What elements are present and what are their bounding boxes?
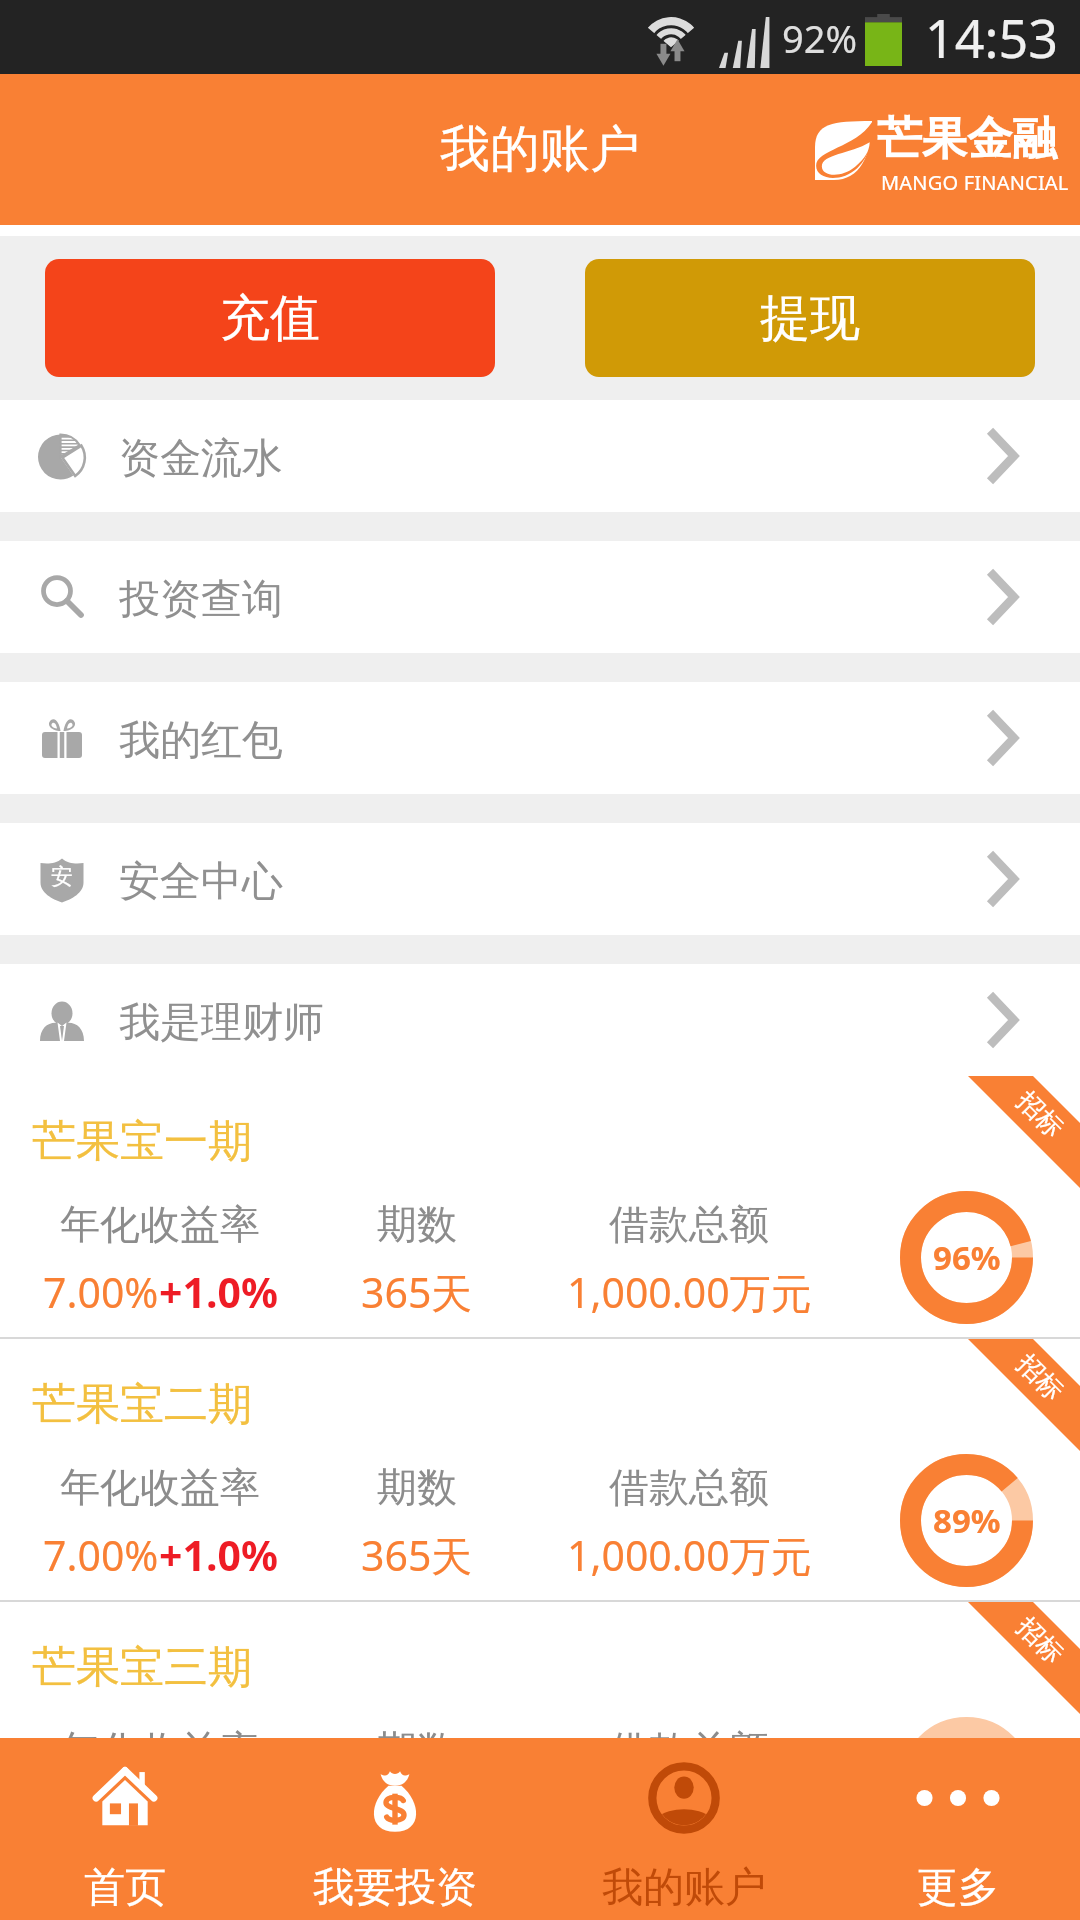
button[interactable]: 充值 [45,259,495,377]
staticText: 92% [782,12,858,64]
button[interactable]: 芒果宝三期 [0,1602,1080,1865]
button[interactable]: 芒果宝二期 [0,1339,1080,1602]
staticText: 资金流水 [119,433,283,485]
staticText: MANGO FINANCIAL [881,169,1069,196]
staticText: 50% [933,1761,1001,1806]
staticText: 365天 [361,1264,473,1320]
button[interactable]: 我的红包 [0,682,1080,794]
staticText: 7.00% [43,1527,159,1583]
staticText: 期数 [377,1199,457,1249]
staticText: 芒果宝二期 [32,1377,252,1432]
staticText: +1.0% [159,1527,278,1583]
staticText: 招标 [1010,1084,1070,1144]
staticText: 我的账户 [602,1862,766,1914]
button[interactable]: 首页 [0,1738,250,1920]
staticText: 1,000.00万元 [567,1264,812,1320]
staticText: 招标 [1010,1610,1070,1670]
staticText: 芒果宝一期 [32,1114,252,1169]
staticText: 期数 [377,1725,457,1775]
staticText: 89% [933,1498,1001,1543]
staticText: 借款总额 [609,1199,769,1249]
staticText: 芒果金融 [877,111,1057,168]
staticText: 我要投资 [313,1862,477,1914]
button[interactable]: 投资查询 [0,541,1080,653]
staticText: 我是理财师 [119,997,324,1049]
button[interactable]: 更多 [821,1738,1080,1920]
staticText: 更多 [917,1862,999,1914]
staticText: 365天 [361,1527,473,1583]
staticText: 安全中心 [119,856,283,908]
staticText: 365天 [361,1790,473,1846]
staticText: 期数 [377,1462,457,1512]
staticText: 1,000.00万元 [567,1790,812,1846]
button[interactable]: 我要投资 [258,1738,532,1920]
button[interactable]: 我的账户 [546,1738,822,1920]
staticText: 安 [51,863,73,891]
staticText: 我的账户 [440,118,640,181]
staticText: 提现 [760,287,860,350]
button[interactable]: 提现 [585,259,1035,377]
button[interactable]: 资金流水 [0,400,1080,512]
button[interactable]: 芒果宝一期 [0,1076,1080,1339]
staticText: 首页 [84,1862,166,1914]
staticText: +1.0% [159,1264,278,1320]
staticText: 借款总额 [609,1462,769,1512]
staticText: 充值 [220,287,320,350]
staticText: 年化收益率 [60,1199,260,1249]
button[interactable]: 我是理财师 [0,964,1080,1076]
staticText: 1,000.00万元 [567,1527,812,1583]
staticText: 年化收益率 [60,1462,260,1512]
staticText: 14:53 [925,2,1058,73]
staticText: 我的红包 [119,715,283,767]
staticText: 借款总额 [609,1725,769,1775]
staticText: 7.00% [43,1790,159,1846]
staticText: 年化收益率 [60,1725,260,1775]
staticText: 96% [933,1235,1001,1280]
staticText: 芒果宝三期 [32,1640,252,1695]
staticText: 7.00% [43,1264,159,1320]
staticText: 投资查询 [119,574,283,626]
staticText: 招标 [1010,1347,1070,1407]
button[interactable]: 安 [0,823,1080,935]
